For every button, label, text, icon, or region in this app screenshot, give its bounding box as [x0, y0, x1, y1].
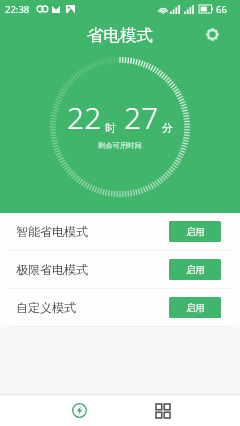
staticText: 省电模式	[87, 25, 153, 46]
staticText: 22	[67, 97, 102, 138]
button[interactable]: 自定义模式	[0, 289, 240, 326]
staticText: 启用	[186, 264, 205, 276]
staticText: 22:38	[5, 3, 30, 16]
staticText: 时	[105, 121, 116, 135]
button[interactable]: 省电	[63, 395, 95, 426]
staticText: 智能省电模式	[16, 224, 88, 239]
staticText: 分	[162, 121, 173, 135]
button[interactable]: 启用	[169, 297, 221, 318]
button[interactable]: 智能省电模式	[0, 213, 240, 250]
staticText: 启用	[186, 226, 205, 238]
staticText: 27	[124, 97, 159, 138]
staticText: 剩余可用时间	[98, 141, 142, 150]
button[interactable]: 启用	[169, 221, 221, 242]
button[interactable]: 启用	[169, 259, 221, 280]
button[interactable]: 极限省电模式	[0, 251, 240, 288]
staticText: 极限省电模式	[16, 262, 88, 277]
staticText: 自定义模式	[16, 300, 76, 315]
button[interactable]: 设置	[199, 22, 225, 48]
button[interactable]: 更多	[147, 395, 179, 426]
staticText: 启用	[186, 302, 205, 314]
staticText: 66	[216, 3, 227, 16]
